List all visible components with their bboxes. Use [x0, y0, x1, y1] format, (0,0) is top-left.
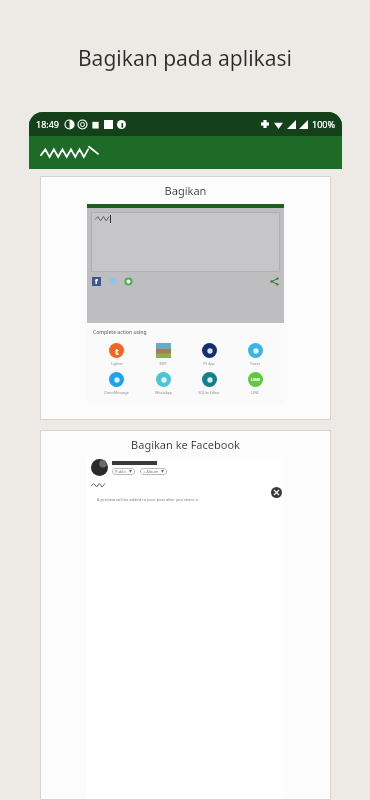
- staticText: t: [115, 345, 119, 357]
- button[interactable]: Share: [270, 277, 279, 286]
- staticText: SQLite Editor: [198, 390, 220, 395]
- button[interactable]: Close: [271, 487, 282, 498]
- staticText: + Album: [143, 469, 159, 474]
- staticText: Bagikan pada aplikasi: [0, 44, 370, 73]
- button[interactable]: PS App: [186, 343, 232, 366]
- staticText: 18:49: [36, 118, 60, 130]
- button[interactable]: Tweet: [232, 343, 278, 366]
- button[interactable]: Bagikan ke Facebook: [40, 430, 331, 800]
- staticText: LINE: [251, 390, 259, 395]
- button[interactable]: Twitter: [108, 277, 117, 286]
- staticText: DirectMessage: [104, 390, 129, 395]
- staticText: Public: [115, 469, 127, 474]
- button[interactable]: DirectMessage: [93, 372, 140, 395]
- staticText: Tweet: [250, 361, 260, 366]
- button[interactable]: SQLite Editor: [186, 372, 232, 395]
- button[interactable]: WhatsApp: [140, 372, 186, 395]
- staticText: Lighter: [111, 361, 123, 366]
- button[interactable]: LINE: [232, 372, 278, 395]
- button[interactable]: Bagikan: [40, 176, 331, 420]
- staticText: f: [95, 277, 98, 286]
- staticText: Complete action using: [93, 329, 147, 336]
- staticText: PS App: [203, 361, 215, 366]
- button[interactable]: WhatsApp: [124, 277, 133, 286]
- staticText: LINE: [251, 377, 261, 382]
- staticText: WhatsApp: [155, 390, 172, 395]
- button[interactable]: MSP: [140, 343, 186, 366]
- button[interactable]: Facebook: [92, 277, 101, 286]
- button[interactable]: + Album: [140, 468, 167, 475]
- staticText: A preview will be added to your post aft…: [97, 497, 200, 502]
- staticText: 100%: [312, 118, 335, 130]
- staticText: Bagikan ke Facebook: [40, 437, 331, 452]
- staticText: MSP: [159, 361, 167, 366]
- button[interactable]: t: [93, 343, 140, 366]
- staticText: Bagikan: [40, 183, 331, 198]
- button[interactable]: Public: [112, 468, 135, 475]
